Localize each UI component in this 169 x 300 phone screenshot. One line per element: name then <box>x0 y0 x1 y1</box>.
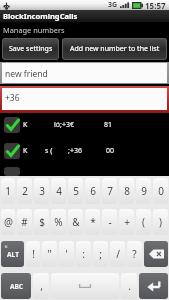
staticText: ( <box>142 215 145 229</box>
staticText: Manage numbers <box>3 25 65 35</box>
staticText: K <box>23 120 28 130</box>
button[interactable]: 7 <box>102 178 117 204</box>
button[interactable]: 1 <box>1 178 15 204</box>
staticText: 00 <box>106 146 115 156</box>
button[interactable]: : <box>76 241 91 267</box>
button[interactable]: Save settings <box>2 38 59 60</box>
staticText: ABC <box>10 282 23 291</box>
staticText: ' <box>65 247 68 261</box>
staticText: ? <box>132 247 137 261</box>
button[interactable]: % <box>51 209 66 235</box>
staticText: 3 <box>39 184 45 198</box>
staticText: ;+36 <box>68 146 82 156</box>
staticText: 2 <box>22 184 28 198</box>
button[interactable]: / <box>110 241 125 267</box>
button[interactable] <box>0 167 169 176</box>
staticText: ! <box>32 247 35 261</box>
staticText: 9 <box>141 184 147 198</box>
staticText: s ( <box>45 146 53 156</box>
staticText: . <box>128 279 131 293</box>
staticText: 0 <box>158 184 164 198</box>
button[interactable]: ! <box>26 241 40 267</box>
button[interactable]: new friend <box>2 63 167 83</box>
staticText: ló;+3€ <box>54 120 74 130</box>
button[interactable]: K <box>0 115 169 141</box>
staticText: ALT <box>7 250 19 259</box>
button[interactable]: ' <box>59 241 74 267</box>
button[interactable]: 6 <box>85 178 100 204</box>
staticText: 8 <box>124 184 130 198</box>
button[interactable]: Enter <box>139 273 168 299</box>
button[interactable]: Space <box>51 273 119 299</box>
staticText: @ <box>4 215 13 229</box>
staticText: 4 <box>56 184 62 198</box>
button[interactable]: ; <box>93 241 108 267</box>
staticText: 5 <box>73 184 79 198</box>
button[interactable]: + <box>119 209 134 235</box>
button[interactable]: ABC <box>1 273 31 299</box>
staticText: 15:57 <box>145 0 166 10</box>
staticText: # <box>21 215 28 229</box>
staticText: +36 <box>5 92 20 104</box>
button[interactable]: - <box>102 209 117 235</box>
button[interactable]: 5 <box>68 178 83 204</box>
staticText: new friend <box>5 68 48 80</box>
button[interactable]: ? <box>127 241 142 267</box>
button[interactable]: @ <box>1 209 15 235</box>
button[interactable]: K <box>0 141 169 167</box>
button[interactable]: ) <box>153 209 168 235</box>
staticText: & <box>72 215 80 229</box>
button[interactable]: 3 <box>34 178 49 204</box>
staticText: K <box>23 146 28 156</box>
staticText: BlockIncomingCalls <box>3 11 78 21</box>
button[interactable]: Add new number to the list <box>62 38 167 60</box>
button[interactable]: ALT <box>1 241 24 267</box>
staticText: " <box>47 247 52 261</box>
staticText: $ <box>39 215 45 229</box>
staticText: + <box>124 215 130 229</box>
button[interactable]: ( <box>136 209 151 235</box>
staticText: Add new number to the list <box>70 44 160 54</box>
button[interactable]: +36 <box>2 88 167 110</box>
staticText: 3G <box>108 0 118 10</box>
staticText: / <box>116 247 120 261</box>
staticText: % <box>54 215 63 229</box>
staticText: - <box>108 215 112 229</box>
button[interactable]: $ <box>34 209 49 235</box>
staticText: 7 <box>107 184 113 198</box>
button[interactable]: * <box>85 209 100 235</box>
staticText: : <box>82 247 85 261</box>
staticText: * <box>90 215 96 229</box>
staticText: 1 <box>5 184 11 198</box>
button[interactable]: " <box>42 241 57 267</box>
button[interactable]: , <box>33 273 49 299</box>
button[interactable]: 4 <box>51 178 66 204</box>
button[interactable]: 8 <box>119 178 134 204</box>
staticText: 81 <box>104 120 113 130</box>
staticText: ) <box>159 215 162 229</box>
staticText: Save settings <box>9 44 53 54</box>
staticText: 6 <box>90 184 96 198</box>
button[interactable]: 9 <box>136 178 151 204</box>
staticText: , <box>40 279 43 293</box>
button[interactable]: 0 <box>153 178 168 204</box>
staticText: ; <box>99 247 102 261</box>
button[interactable]: Delete <box>144 241 168 267</box>
button[interactable]: # <box>17 209 32 235</box>
button[interactable]: 2 <box>17 178 32 204</box>
button[interactable]: . <box>121 273 137 299</box>
button[interactable]: & <box>68 209 83 235</box>
